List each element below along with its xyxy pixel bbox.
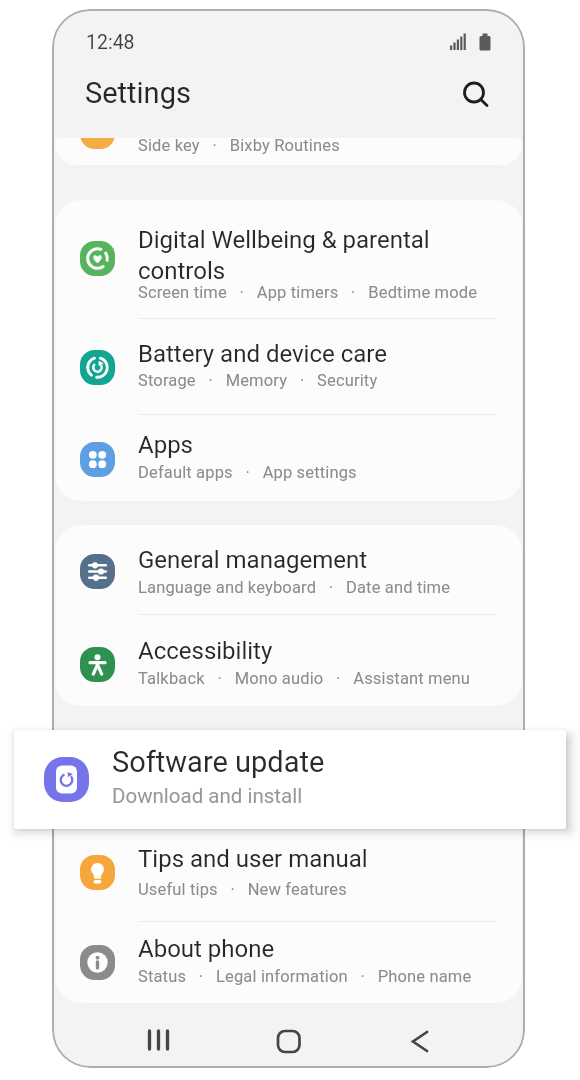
button[interactable]: Battery and device care bbox=[55, 319, 522, 414]
button[interactable]: Accessibility bbox=[55, 614, 522, 706]
staticText: General management bbox=[138, 546, 368, 574]
staticText: Default apps · App settings bbox=[138, 463, 357, 482]
button[interactable]: About phone bbox=[55, 921, 522, 1003]
button[interactable] bbox=[126, 1015, 186, 1068]
staticText: Useful tips · New features bbox=[138, 880, 347, 899]
staticText: Storage · Memory · Security bbox=[138, 371, 378, 390]
staticText: 12:48 bbox=[86, 31, 135, 54]
button[interactable] bbox=[259, 1015, 319, 1068]
button[interactable]: Software update bbox=[14, 730, 566, 829]
staticText: Download and install bbox=[112, 784, 303, 808]
staticText: Accessibility bbox=[138, 637, 273, 665]
button[interactable] bbox=[457, 75, 493, 111]
button[interactable]: Apps bbox=[55, 414, 522, 501]
staticText: Tips and user manual bbox=[138, 845, 368, 873]
staticText: Battery and device care bbox=[138, 340, 387, 368]
staticText: Language and keyboard · Date and time bbox=[138, 578, 451, 597]
staticText: Side key · Bixby Routines bbox=[138, 138, 340, 155]
button[interactable]: Tips and user manual bbox=[55, 830, 522, 921]
staticText: Software update bbox=[112, 745, 325, 779]
button[interactable]: Digital Wellbeing & parental controls bbox=[55, 200, 522, 318]
staticText: Settings bbox=[85, 76, 191, 110]
button[interactable]: Side key · Bixby Routines bbox=[55, 138, 522, 165]
staticText: Talkback · Mono audio · Assistant menu bbox=[138, 669, 471, 688]
button[interactable]: General management bbox=[55, 525, 522, 614]
staticText: About phone bbox=[138, 935, 275, 963]
staticText: Digital Wellbeing & parental controls bbox=[138, 226, 430, 285]
staticText: Apps bbox=[138, 431, 193, 459]
button[interactable] bbox=[390, 1015, 450, 1068]
staticText: Status · Legal information · Phone name bbox=[138, 967, 472, 986]
staticText: Screen time · App timers · Bedtime mode bbox=[138, 283, 478, 302]
